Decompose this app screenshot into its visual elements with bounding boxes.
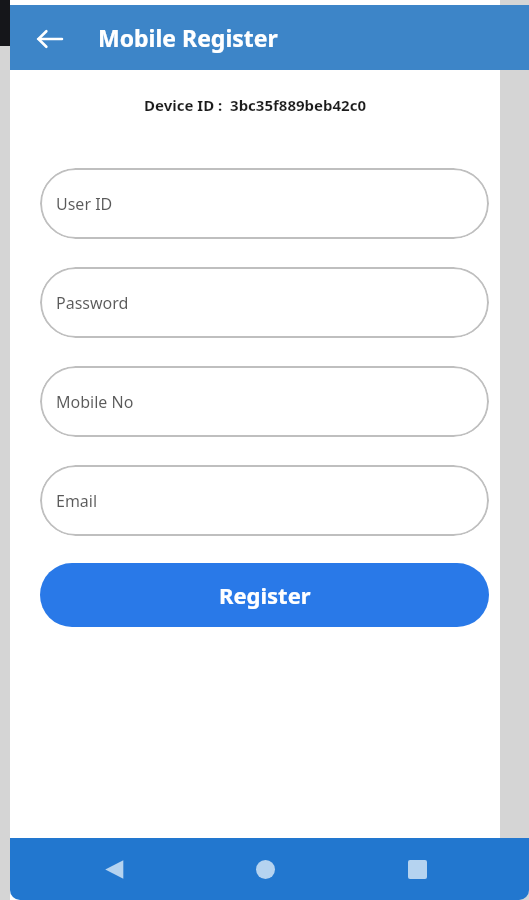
staticText: Email bbox=[56, 490, 98, 512]
button[interactable]: Email bbox=[40, 465, 489, 536]
button[interactable]: Back bbox=[92, 847, 136, 891]
staticText: Password bbox=[56, 292, 129, 314]
button[interactable]: Register bbox=[40, 563, 489, 627]
staticText: Mobile No bbox=[56, 391, 134, 413]
button[interactable]: Back bbox=[24, 13, 76, 65]
staticText: Device ID : 3bc35f889beb42c0 bbox=[144, 95, 366, 115]
button[interactable]: Home bbox=[243, 847, 287, 891]
button[interactable]: Recent apps bbox=[395, 847, 439, 891]
button[interactable]: Password bbox=[40, 267, 489, 338]
staticText: Mobile Register bbox=[98, 22, 278, 53]
button[interactable]: User ID bbox=[40, 168, 489, 239]
staticText: User ID bbox=[56, 193, 113, 215]
button[interactable]: Mobile No bbox=[40, 366, 489, 437]
staticText: Register bbox=[219, 580, 311, 610]
